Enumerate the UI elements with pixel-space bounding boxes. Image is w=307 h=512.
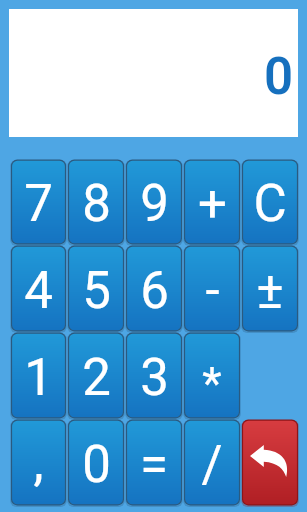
- staticText: ±: [256, 261, 284, 321]
- staticText: 7: [24, 174, 53, 234]
- staticText: 0: [82, 435, 111, 495]
- staticText: 1: [24, 348, 53, 408]
- staticText: 6: [140, 261, 169, 321]
- button[interactable]: ,: [10, 419, 67, 506]
- staticText: 8: [82, 174, 111, 234]
- staticText: ,: [33, 433, 44, 493]
- staticText: 5: [82, 261, 111, 321]
- button[interactable]: 0: [67, 419, 125, 506]
- staticText: 2: [82, 348, 111, 408]
- button[interactable]: /: [183, 419, 241, 506]
- staticText: 9: [140, 174, 169, 234]
- button[interactable]: 2: [67, 332, 125, 419]
- staticText: 4: [24, 261, 53, 321]
- button[interactable]: C: [241, 159, 299, 245]
- button[interactable]: 5: [67, 245, 125, 332]
- staticText: -: [205, 261, 220, 321]
- button[interactable]: 4: [10, 245, 67, 332]
- staticText: *: [202, 357, 222, 410]
- button[interactable]: 3: [125, 332, 183, 419]
- button[interactable]: 1: [10, 332, 67, 419]
- staticText: =: [140, 435, 168, 495]
- button[interactable]: Backspace: [241, 419, 299, 506]
- button[interactable]: 6: [125, 245, 183, 332]
- button[interactable]: 7: [10, 159, 67, 245]
- button[interactable]: =: [125, 419, 183, 506]
- staticText: +: [198, 174, 227, 234]
- staticText: C: [253, 174, 287, 234]
- button[interactable]: 8: [67, 159, 125, 245]
- button[interactable]: +: [183, 159, 241, 245]
- staticText: 3: [140, 348, 169, 408]
- button[interactable]: 0: [9, 9, 298, 137]
- button[interactable]: *: [183, 332, 241, 419]
- staticText: 0: [264, 47, 294, 107]
- button[interactable]: -: [183, 245, 241, 332]
- button[interactable]: ±: [241, 245, 299, 332]
- button[interactable]: 9: [125, 159, 183, 245]
- staticText: /: [201, 435, 223, 495]
